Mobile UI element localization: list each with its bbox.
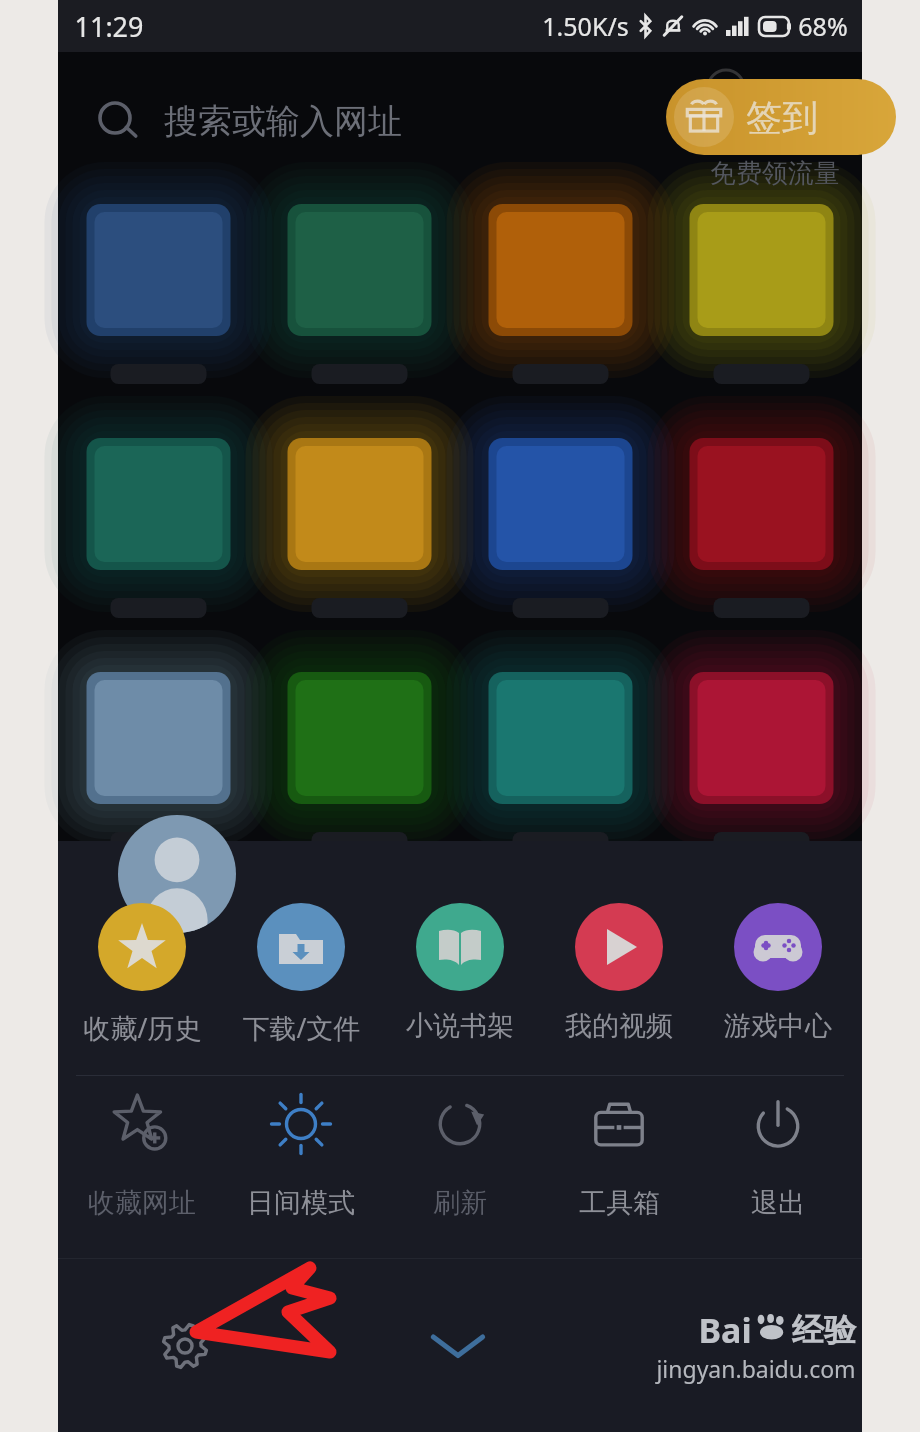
staticText: 收藏网址 <box>88 1186 196 1220</box>
staticText: 游戏中心 <box>724 1009 832 1043</box>
button[interactable]: 日间模式 <box>226 1076 376 1258</box>
button[interactable]: 工具箱 <box>544 1076 694 1258</box>
staticText: 11:29 <box>74 8 144 45</box>
button[interactable]: 签到 <box>666 79 896 155</box>
staticText: 小说书架 <box>406 1009 514 1043</box>
staticText: 刷新 <box>433 1186 487 1220</box>
button[interactable]: Settings <box>154 1315 216 1377</box>
staticText: 日间模式 <box>247 1186 355 1220</box>
staticText: 签到 <box>746 95 818 140</box>
button[interactable]: 搜索或输入网址 <box>94 98 402 144</box>
staticText: 收藏/历史 <box>83 1009 202 1046</box>
staticText: 搜索或输入网址 <box>164 100 402 143</box>
button[interactable]: 收藏网址 <box>67 1076 217 1258</box>
staticText: 下载/文件 <box>242 1009 361 1046</box>
staticText: 工具箱 <box>579 1186 660 1220</box>
staticText: 68% <box>798 9 848 43</box>
staticText: jingyan.baidu.com <box>656 1353 856 1384</box>
staticText: 我的视频 <box>565 1009 673 1043</box>
button[interactable]: 我的视频 <box>544 899 694 1075</box>
staticText: 退出 <box>751 1186 805 1220</box>
button[interactable]: 下载/文件 <box>226 899 376 1075</box>
button[interactable]: 刷新 <box>385 1076 535 1258</box>
staticText: 1.50K/s <box>542 9 629 43</box>
staticText: Bai <box>698 1307 752 1353</box>
button[interactable]: 游戏中心 <box>703 899 853 1075</box>
staticText: 经验 <box>792 1310 856 1350</box>
button[interactable]: Collapse <box>413 1315 503 1377</box>
button[interactable]: 小说书架 <box>385 899 535 1075</box>
button[interactable]: 退出 <box>703 1076 853 1258</box>
button[interactable]: 收藏/历史 <box>67 899 217 1075</box>
staticText: 免费领流量 <box>710 157 840 190</box>
